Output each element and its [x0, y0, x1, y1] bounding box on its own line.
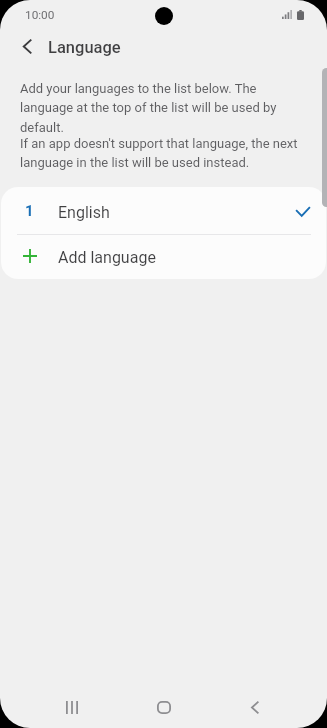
staticText: Add language [58, 248, 156, 267]
button[interactable]: Back [231, 683, 279, 728]
button[interactable]: Add language [1, 235, 326, 278]
staticText: 10:00 [25, 8, 55, 22]
staticText: Language [48, 38, 121, 57]
staticText: If an app doesn't support that language,… [20, 136, 302, 171]
button[interactable]: Home [140, 683, 188, 728]
staticText: Add your languages to the list below. Th… [20, 81, 302, 136]
staticText: 1 [25, 202, 34, 220]
button[interactable]: Navigate up [9, 30, 45, 62]
button[interactable]: 1 [1, 187, 326, 234]
button[interactable]: Recent apps [48, 683, 96, 728]
staticText: English [58, 203, 110, 222]
